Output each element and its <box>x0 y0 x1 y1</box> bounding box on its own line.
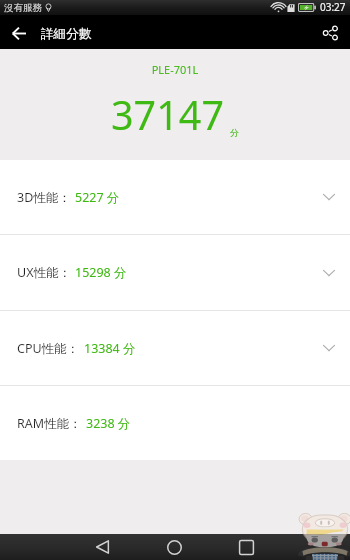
staticText: 沒有服務 <box>4 2 42 14</box>
staticText: CPU性能： <box>17 340 80 357</box>
staticText: 13384 分 <box>84 340 136 357</box>
button[interactable]: Home <box>152 534 197 560</box>
staticText: 37147 <box>111 88 224 142</box>
staticText: 5227 分 <box>75 189 120 206</box>
button[interactable]: Back <box>0 15 38 49</box>
staticText: UX性能： <box>17 264 71 281</box>
button[interactable]: Back <box>80 534 125 560</box>
staticText: 分 <box>230 127 239 138</box>
staticText: 03:27 <box>320 0 346 14</box>
staticText: PLE-701L <box>0 62 350 77</box>
button[interactable]: CPU性能： <box>0 311 350 385</box>
button[interactable]: Share <box>309 15 347 49</box>
button[interactable]: Recents <box>224 534 269 560</box>
button[interactable]: RAM性能： <box>0 386 350 460</box>
staticText: 詳細分數 <box>41 26 92 42</box>
button[interactable]: 3D性能： <box>0 160 350 234</box>
staticText: 3D性能： <box>17 189 71 206</box>
staticText: 3238 分 <box>86 415 131 432</box>
button[interactable]: UX性能： <box>0 235 350 310</box>
staticText: 15298 分 <box>75 264 127 281</box>
staticText: RAM性能： <box>17 415 82 432</box>
